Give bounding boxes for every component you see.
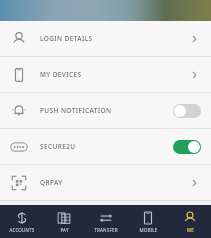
- staticText: SECURE2U: [40, 142, 76, 151]
- other: Open: [187, 68, 201, 82]
- staticText: TRANSFER: [94, 227, 118, 233]
- button[interactable]: ME: [169, 205, 211, 238]
- staticText: LOGIN DETAILS: [40, 34, 93, 43]
- staticText: PAY: [60, 227, 69, 233]
- staticText: MY DEVICES: [40, 70, 82, 79]
- other: Open: [187, 32, 201, 46]
- staticText: MOBILE: [139, 227, 158, 233]
- staticText: ACCOUNTS: [9, 227, 35, 233]
- button[interactable]: SECURE2U: [0, 129, 211, 164]
- staticText: ME: [187, 227, 194, 233]
- button[interactable]: Toggle off: [173, 104, 201, 118]
- button[interactable]: Toggle on: [173, 140, 201, 154]
- button[interactable]: MY DEVICES: [0, 57, 211, 92]
- other: Open: [187, 176, 201, 190]
- button[interactable]: TRANSFER: [85, 205, 127, 238]
- button[interactable]: PUSH NOTIFICATION: [0, 93, 211, 128]
- staticText: PUSH NOTIFICATION: [40, 106, 112, 115]
- button[interactable]: ACCOUNTS: [0, 205, 43, 238]
- button[interactable]: QRPAY: [0, 165, 211, 200]
- button[interactable]: MOBILE: [127, 205, 169, 238]
- button[interactable]: LOGIN DETAILS: [0, 21, 211, 56]
- staticText: QRPAY: [40, 178, 63, 187]
- button[interactable]: PAY: [43, 205, 85, 238]
